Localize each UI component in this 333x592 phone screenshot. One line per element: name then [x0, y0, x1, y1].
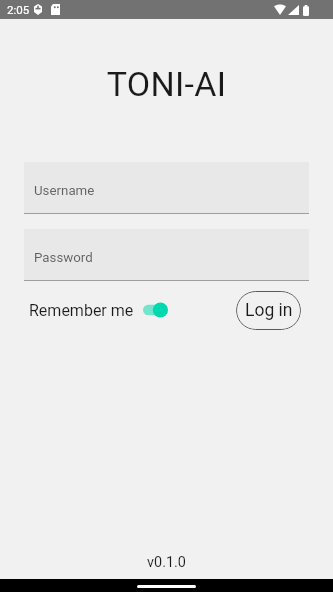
staticText: Log in: [245, 300, 293, 321]
button[interactable]: Home: [137, 585, 196, 588]
button[interactable]: Password: [24, 229, 309, 280]
staticText: Password: [34, 250, 93, 266]
staticText: TONI-AI: [0, 64, 333, 104]
button[interactable]: Log in: [236, 291, 301, 330]
staticText: 2:05: [7, 3, 30, 16]
staticText: Remember me: [29, 301, 134, 320]
button[interactable]: Remember me toggle: [143, 302, 168, 318]
staticText: Username: [34, 183, 95, 199]
button[interactable]: Remember me: [29, 301, 168, 320]
button[interactable]: Username: [24, 162, 309, 213]
staticText: v0.1.0: [0, 554, 333, 571]
